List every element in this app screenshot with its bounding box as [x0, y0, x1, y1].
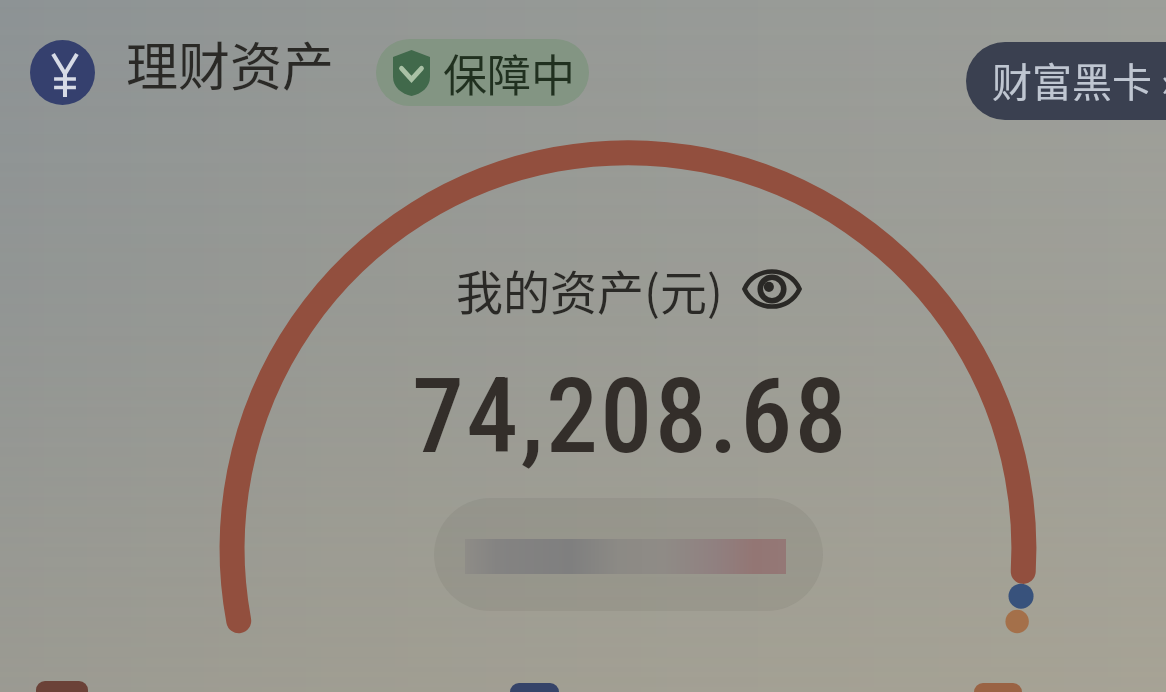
button[interactable]: [510, 683, 559, 692]
button[interactable]: Toggle balance visibility: [456, 255, 802, 323]
button[interactable]: [434, 498, 823, 611]
staticText: 保障中: [443, 41, 575, 105]
staticText: 财富黑卡 ›: [992, 51, 1166, 109]
button[interactable]: 保障中: [376, 39, 589, 106]
button[interactable]: Wealth account: [30, 40, 95, 105]
button[interactable]: 财富黑卡 ›: [966, 42, 1166, 120]
button[interactable]: [36, 681, 88, 692]
button[interactable]: 理财资产: [126, 26, 335, 101]
staticText: 我的资产(元): [456, 255, 723, 323]
staticText: 74,208.68: [412, 356, 849, 478]
button[interactable]: [974, 683, 1022, 692]
staticText: 理财资产: [126, 26, 335, 101]
